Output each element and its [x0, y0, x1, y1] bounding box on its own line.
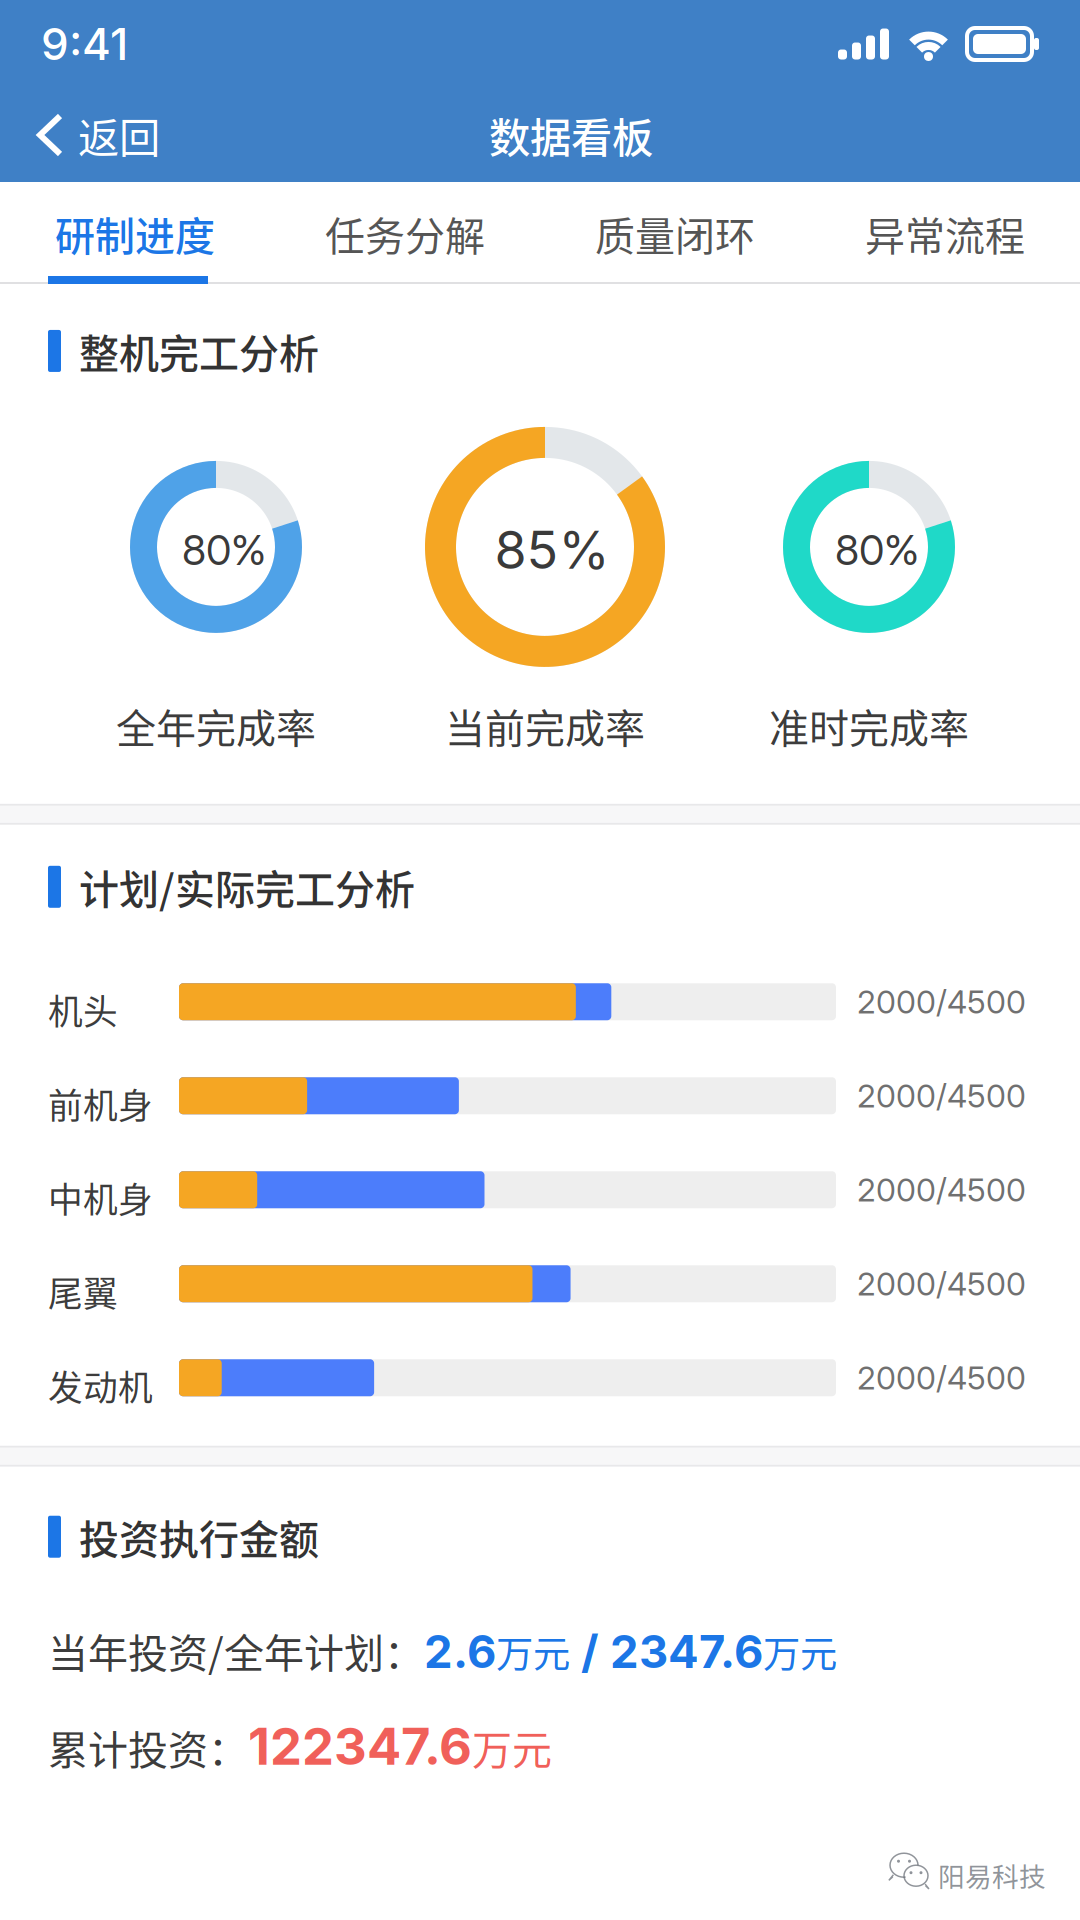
staticText: 中机身	[48, 1173, 153, 1223]
staticText: 质量闭环	[595, 204, 755, 262]
staticText: 机头	[48, 985, 118, 1035]
staticText: 9:41	[41, 17, 128, 71]
staticText: 当前完成率	[445, 697, 645, 755]
staticText: 122347.6	[248, 1716, 472, 1777]
staticText: 发动机	[48, 1361, 153, 1411]
staticText: 准时完成率	[769, 697, 969, 755]
staticText: 万元	[763, 1625, 837, 1679]
staticText: 80%	[835, 525, 919, 575]
button[interactable]: 研制进度	[0, 183, 270, 284]
staticText: 2000/4500	[857, 1264, 1026, 1303]
staticText: 数据看板	[489, 105, 653, 165]
button[interactable]: 异常流程	[810, 183, 1080, 284]
staticText: 尾翼	[48, 1267, 118, 1317]
staticText: 2.6	[424, 1624, 496, 1679]
staticText: 阳易科技	[938, 1856, 1046, 1894]
staticText: 万元	[472, 1718, 552, 1776]
staticText: 全年完成率	[116, 697, 316, 755]
staticText: 85%	[494, 518, 609, 581]
staticText: 2347.6	[610, 1624, 763, 1679]
staticText: 任务分解	[325, 204, 485, 262]
staticText: /	[570, 1624, 610, 1679]
staticText: 当年投资/全年计划：	[48, 1622, 424, 1680]
staticText: 返回	[78, 105, 160, 165]
staticText: 2000/4500	[857, 982, 1026, 1021]
staticText: 2000/4500	[857, 1358, 1026, 1397]
staticText: 前机身	[48, 1079, 153, 1129]
staticText: 研制进度	[55, 204, 215, 262]
button[interactable]: 任务分解	[270, 183, 540, 284]
staticText: 万元	[496, 1625, 570, 1679]
staticText: 2000/4500	[857, 1076, 1026, 1115]
staticText: 80%	[182, 525, 266, 575]
staticText: 2000/4500	[857, 1170, 1026, 1209]
staticText: 整机完工分析	[79, 322, 319, 380]
button[interactable]: 返回	[0, 88, 196, 182]
staticText: 投资执行金额	[79, 1508, 319, 1566]
staticText: 异常流程	[865, 204, 1025, 262]
staticText: 计划/实际完工分析	[79, 858, 415, 916]
staticText: 累计投资：	[48, 1718, 248, 1776]
button[interactable]: 质量闭环	[540, 183, 810, 284]
